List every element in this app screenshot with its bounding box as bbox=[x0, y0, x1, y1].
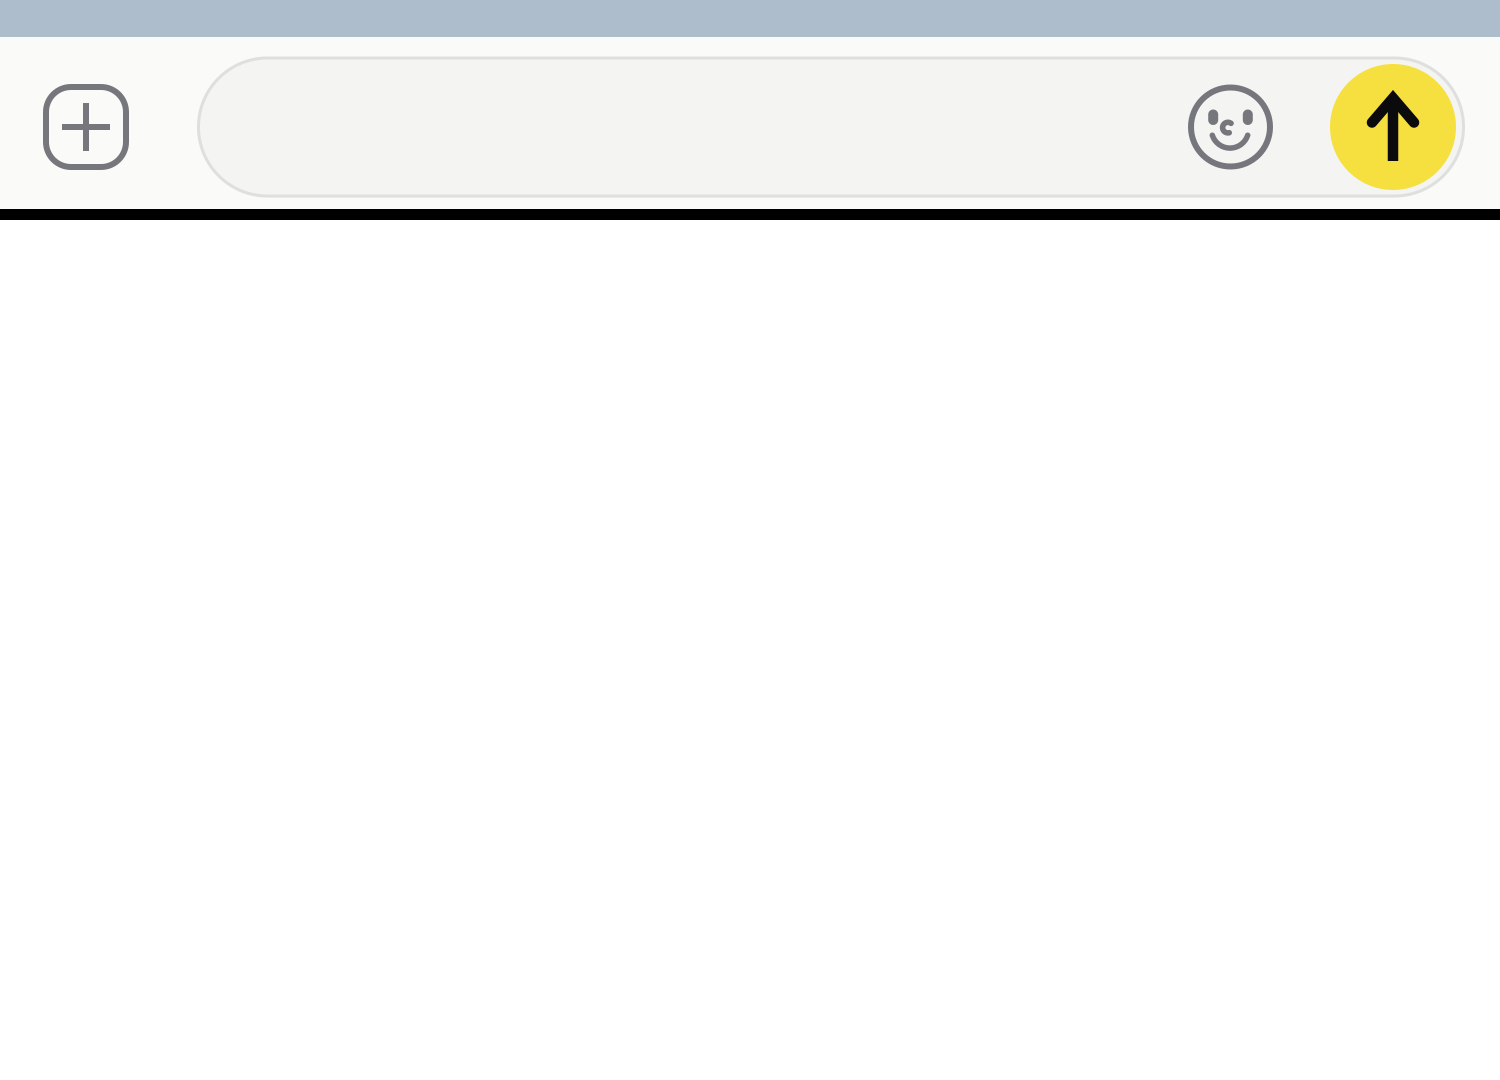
button[interactable]: Add attachment bbox=[42, 41, 130, 213]
button[interactable]: Message bbox=[197, 56, 1465, 197]
button[interactable]: Stickers bbox=[1188, 56, 1273, 197]
button[interactable]: Send bbox=[1330, 56, 1456, 197]
